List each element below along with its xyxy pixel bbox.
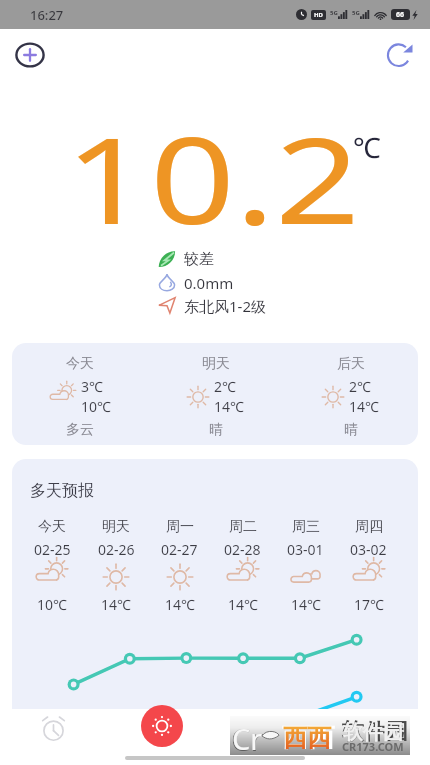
- staticText: 14℃: [291, 595, 321, 614]
- staticText: 16:27: [30, 6, 64, 24]
- staticText: 今天: [38, 518, 66, 536]
- staticText: 17℃: [354, 595, 384, 614]
- staticText: 5G: [352, 9, 360, 17]
- button[interactable]: 今天: [20, 518, 84, 614]
- staticText: 03-02: [350, 540, 387, 559]
- staticText: 14℃: [165, 595, 195, 614]
- staticText: 西西: [283, 723, 331, 753]
- button[interactable]: Refresh: [381, 38, 415, 72]
- staticText: 软件园: [342, 718, 408, 746]
- staticText: 10.2: [65, 98, 361, 259]
- button[interactable]: Add city: [14, 39, 46, 71]
- staticText: Cr: [231, 718, 264, 757]
- staticText: 2℃: [214, 377, 236, 396]
- staticText: 14℃: [349, 397, 379, 416]
- staticText: 多云: [66, 421, 94, 439]
- staticText: 5G: [330, 9, 338, 17]
- staticText: 较差: [184, 250, 214, 268]
- staticText: 10℃: [37, 595, 67, 614]
- staticText: CR173.COM: [342, 739, 404, 754]
- staticText: 明天: [202, 355, 230, 373]
- staticText: 周一: [166, 518, 194, 536]
- staticText: 西西: [282, 722, 334, 753]
- staticText: 14℃: [101, 595, 131, 614]
- staticText: 软件园: [343, 720, 403, 745]
- staticText: Cr: [232, 719, 263, 758]
- button[interactable]: 周四: [337, 518, 400, 614]
- button[interactable]: 明天: [84, 518, 148, 614]
- staticText: 2℃: [349, 377, 371, 396]
- staticText: 02-27: [161, 540, 198, 559]
- staticText: 晴: [209, 421, 223, 439]
- staticText: 周三: [292, 518, 320, 536]
- staticText: ℃: [353, 128, 381, 166]
- button[interactable]: Weather: [141, 705, 183, 747]
- staticText: 3℃: [81, 377, 103, 396]
- staticText: 今天: [66, 355, 94, 373]
- staticText: 02-26: [98, 540, 135, 559]
- staticText: 66: [396, 10, 405, 20]
- staticText: 后天: [337, 355, 365, 373]
- staticText: 03-01: [287, 540, 324, 559]
- button[interactable]: 明天: [148, 343, 283, 445]
- button[interactable]: 今天: [12, 343, 148, 445]
- staticText: 周四: [355, 518, 383, 536]
- staticText: 晴: [344, 421, 358, 439]
- staticText: 14℃: [228, 595, 258, 614]
- staticText: 02-28: [224, 540, 261, 559]
- button[interactable]: 后天: [283, 343, 418, 445]
- staticText: 多天预报: [30, 481, 94, 501]
- staticText: 0.0mm: [184, 273, 234, 291]
- button[interactable]: 周三: [274, 518, 337, 614]
- staticText: 14℃: [214, 397, 244, 416]
- button[interactable]: Alarm: [37, 712, 70, 745]
- staticText: 东北风1-2级: [184, 296, 266, 314]
- staticText: 10℃: [81, 397, 111, 416]
- staticText: HD: [314, 11, 323, 19]
- button[interactable]: 周二: [211, 518, 274, 614]
- staticText: 明天: [102, 518, 130, 536]
- staticText: 02-25: [34, 540, 71, 559]
- button[interactable]: 周一: [148, 518, 211, 614]
- staticText: 周二: [229, 518, 257, 536]
